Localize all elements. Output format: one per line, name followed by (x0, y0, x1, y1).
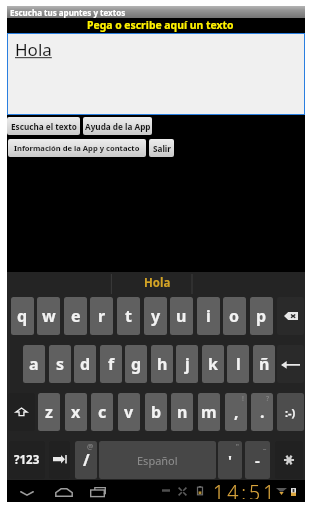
staticText: Pega o escribe aquí un texto (87, 18, 234, 32)
staticText: ' (228, 450, 232, 470)
button[interactable]: - (245, 441, 270, 479)
button[interactable]: ñ (253, 345, 275, 383)
staticText: Ayuda de la App (85, 121, 151, 132)
staticText: s (56, 353, 65, 375)
staticText: z (45, 401, 53, 423)
staticText: 14:51 (213, 479, 278, 499)
staticText: t (125, 305, 132, 327)
button[interactable]: , (225, 393, 247, 431)
staticText: Escucha el texto (11, 121, 77, 132)
staticText: v (124, 401, 134, 423)
staticText: j (185, 353, 190, 375)
button[interactable]: b (145, 393, 167, 431)
staticText: Salir (153, 143, 171, 154)
staticText: p (256, 305, 267, 327)
button[interactable]: o (223, 297, 246, 335)
button[interactable]: Hide keyboard (14, 486, 40, 500)
staticText: g (131, 353, 142, 375)
button[interactable]: ' (218, 441, 242, 479)
button[interactable]: i (197, 297, 220, 335)
button[interactable]: a (23, 345, 45, 383)
staticText: _ (263, 442, 267, 452)
staticText: Información de la App y contacto (14, 143, 140, 153)
button[interactable]: u (170, 297, 193, 335)
staticText: a (29, 353, 39, 375)
button[interactable]: c (91, 393, 113, 431)
button[interactable]: Información de la App y contacto (8, 139, 146, 157)
button[interactable]: z (38, 393, 60, 431)
staticText: h (157, 353, 168, 375)
staticText: , (234, 401, 239, 423)
staticText: - (255, 450, 260, 470)
staticText: q (17, 305, 28, 327)
button[interactable]: e (64, 297, 87, 335)
staticText: Hola (144, 275, 171, 291)
button[interactable]: Shift (8, 393, 35, 431)
button[interactable]: d (74, 345, 96, 383)
button[interactable]: q (11, 297, 34, 335)
staticText: i (206, 305, 211, 327)
button[interactable]: Tab (49, 441, 70, 479)
button[interactable]: k (202, 345, 224, 383)
staticText: ! (242, 394, 244, 404)
button[interactable]: r (90, 297, 113, 335)
button[interactable]: :-) (277, 393, 304, 431)
button[interactable]: v (118, 393, 140, 431)
button[interactable]: Recent apps (86, 485, 110, 499)
button[interactable]: Ayuda de la App (83, 117, 152, 135)
button[interactable]: l (227, 345, 249, 383)
staticText: d (80, 353, 91, 375)
staticText: ?123 (14, 452, 40, 468)
button[interactable]: Enter (277, 345, 304, 383)
staticText: l (236, 353, 241, 375)
button[interactable]: x (65, 393, 87, 431)
button[interactable]: . (251, 393, 273, 431)
button[interactable]: Keyboard settings (275, 441, 303, 479)
staticText: " (236, 442, 239, 452)
button[interactable]: Salir (149, 139, 174, 157)
button[interactable]: w (37, 297, 60, 335)
button[interactable]: Home (49, 485, 79, 499)
staticText: Hola (15, 38, 52, 61)
staticText: n (177, 401, 188, 423)
staticText: / (83, 449, 90, 471)
staticText: f (108, 353, 115, 375)
button[interactable]: / (75, 441, 97, 479)
staticText: @ (87, 442, 94, 452)
staticText: m (201, 401, 217, 423)
staticText: k (208, 353, 218, 375)
button[interactable]: y (144, 297, 167, 335)
staticText: u (176, 305, 187, 327)
staticText: . (260, 401, 265, 423)
staticText: y (151, 305, 161, 327)
staticText: c (98, 401, 107, 423)
button[interactable]: m (198, 393, 220, 431)
staticText: ? (266, 394, 270, 404)
button[interactable]: s (49, 345, 71, 383)
button[interactable]: g (125, 345, 147, 383)
button[interactable]: h (151, 345, 173, 383)
button[interactable]: p (250, 297, 273, 335)
staticText: w (42, 305, 56, 327)
staticText: Escucha tus apuntes y textos (10, 7, 126, 18)
button[interactable]: j (176, 345, 198, 383)
staticText: ñ (259, 353, 270, 375)
staticText: x (71, 401, 81, 423)
button[interactable]: t (117, 297, 140, 335)
staticText: :-) (285, 405, 296, 420)
button[interactable]: n (171, 393, 193, 431)
button[interactable]: ?123 (9, 441, 45, 479)
staticText: o (229, 305, 240, 327)
button[interactable]: f (100, 345, 122, 383)
staticText: b (151, 401, 162, 423)
button[interactable]: Backspace (277, 297, 304, 335)
button[interactable]: Escucha el texto (7, 117, 80, 135)
staticText: r (98, 305, 106, 327)
staticText: Español (137, 453, 178, 468)
button[interactable]: Español (99, 441, 216, 479)
staticText: e (71, 305, 81, 327)
